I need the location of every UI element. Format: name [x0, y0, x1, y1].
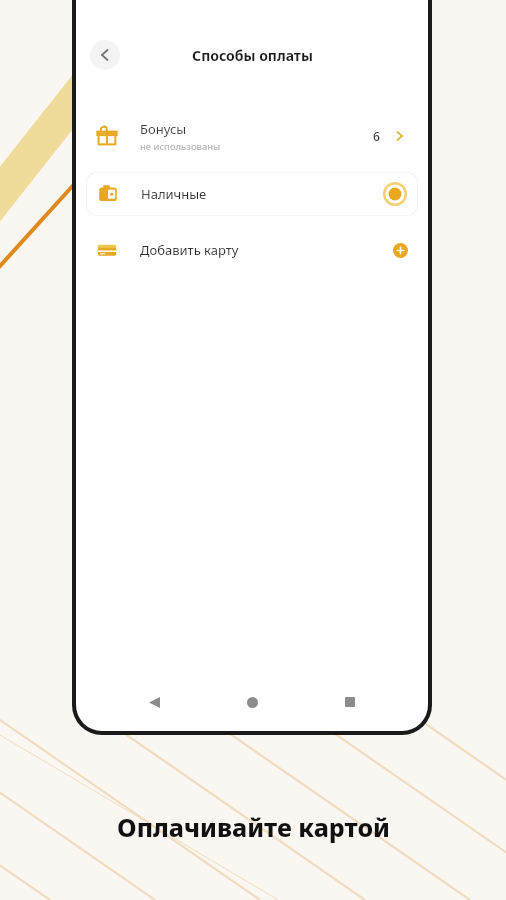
staticText: Наличные — [141, 185, 383, 203]
staticText: 6 — [373, 128, 380, 144]
staticText: Добавить карту — [140, 241, 393, 259]
other: Добавить — [393, 243, 408, 258]
staticText: Способы оплаты — [192, 46, 313, 65]
button[interactable]: Обзор — [330, 682, 370, 722]
button[interactable]: Главная — [232, 682, 272, 722]
button[interactable]: Бонусы — [76, 110, 428, 162]
staticText: Оплачивайте картой — [117, 810, 390, 844]
button[interactable]: Добавить карту — [76, 228, 428, 272]
staticText: Бонусы — [140, 120, 187, 138]
staticText: не использованы — [140, 140, 221, 153]
button[interactable]: Наличные — [86, 172, 418, 216]
button[interactable]: Назад — [134, 682, 174, 722]
button[interactable]: Назад — [90, 40, 120, 70]
